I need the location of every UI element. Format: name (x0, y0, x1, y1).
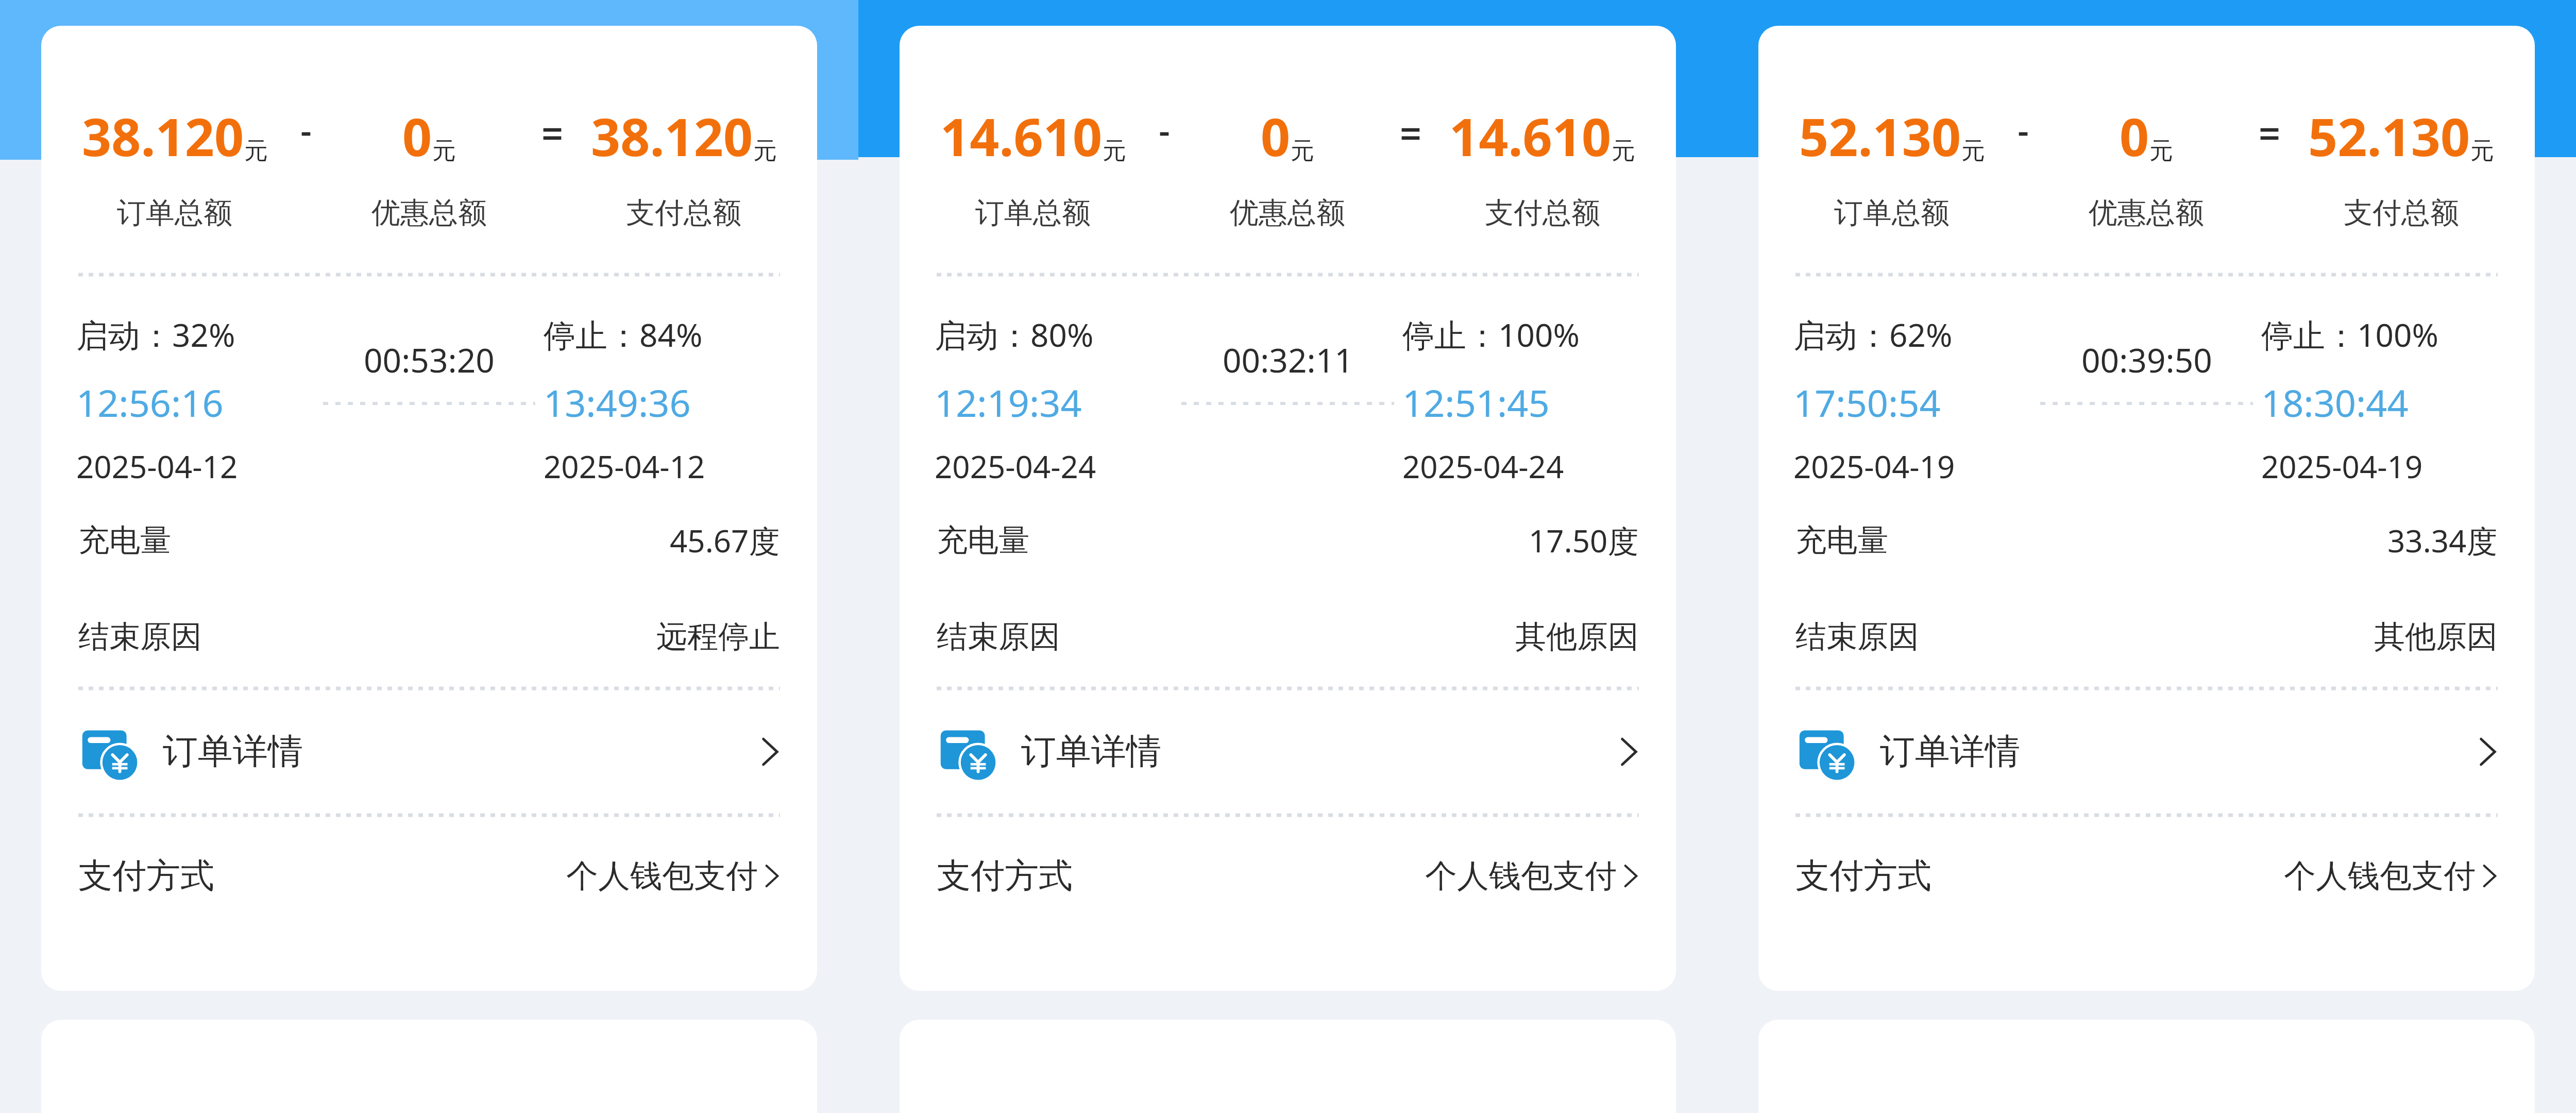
staticText: 0 (402, 101, 432, 171)
staticText: 充电量 (78, 521, 171, 560)
staticText: 订单详情 (163, 730, 303, 774)
staticText: 充电量 (1795, 521, 1888, 560)
staticText: 优惠总额 (2089, 195, 2204, 231)
staticText: 12:19:34 (935, 377, 1082, 428)
staticText: 元 (1291, 136, 1314, 166)
staticText: 其他原因 (2374, 617, 2498, 656)
staticText: 订单总额 (1834, 195, 1950, 231)
staticText: 38.120 (82, 101, 244, 171)
staticText: 订单详情 (1021, 730, 1161, 774)
staticText: 启动：80% (935, 313, 1094, 357)
staticText: 0 (1261, 101, 1291, 171)
staticText: 其他原因 (1515, 617, 1639, 656)
staticText: 充电量 (937, 521, 1029, 560)
staticText: 2025-04-19 (2261, 445, 2423, 487)
staticText: 支付方式 (78, 854, 214, 897)
staticText: 2025-04-19 (1793, 445, 1955, 487)
staticText: 元 (1612, 136, 1635, 166)
staticText: 支付方式 (937, 854, 1073, 897)
staticText: 52.130 (1799, 101, 1961, 171)
staticText: 启动：32% (76, 313, 235, 357)
staticText: 18:30:44 (2261, 377, 2409, 428)
staticText: 元 (1961, 136, 1985, 166)
staticText: 元 (753, 136, 777, 166)
staticText: 订单总额 (117, 195, 232, 231)
button[interactable]: 支付方式 (900, 817, 1676, 934)
staticText: 个人钱包支付 (1425, 856, 1617, 896)
staticText: 14.610 (1449, 101, 1612, 171)
staticText: 52.130 (2308, 101, 2470, 171)
staticText: 38.120 (591, 101, 753, 171)
staticText: 优惠总额 (371, 195, 487, 231)
staticText: 元 (244, 136, 268, 166)
staticText: 订单详情 (1880, 730, 2020, 774)
staticText: 00:39:50 (2081, 338, 2212, 382)
staticText: 00:53:20 (364, 338, 495, 382)
staticText: 元 (1103, 136, 1126, 166)
staticText: 0 (2120, 101, 2149, 171)
staticText: 2025-04-12 (544, 445, 705, 487)
staticText: 停止：84% (544, 313, 703, 357)
staticText: 2025-04-24 (935, 445, 1096, 487)
staticText: 支付总额 (2344, 195, 2459, 231)
staticText: 元 (432, 136, 456, 166)
staticText: 12:51:45 (1402, 377, 1550, 428)
button[interactable]: 订单详情 (900, 690, 1676, 813)
staticText: 优惠总额 (1230, 195, 1345, 231)
staticText: 支付总额 (1485, 195, 1600, 231)
staticText: 启动：62% (1793, 313, 1953, 357)
staticText: 14.610 (940, 101, 1103, 171)
button[interactable]: 订单详情 (1758, 690, 2535, 813)
staticText: 17:50:54 (1793, 377, 1941, 428)
staticText: 订单总额 (975, 195, 1091, 231)
staticText: 元 (2149, 136, 2173, 166)
other: 订单详情 (78, 718, 145, 785)
button[interactable]: 支付方式 (41, 817, 817, 934)
staticText: 支付总额 (626, 195, 741, 231)
staticText: 结束原因 (1795, 617, 1919, 656)
staticText: 13:49:36 (544, 377, 691, 428)
button[interactable]: 订单详情 (41, 690, 817, 813)
staticText: 12:56:16 (76, 377, 224, 428)
staticText: 远程停止 (656, 617, 780, 656)
other: 订单详情 (937, 718, 1004, 785)
staticText: 2025-04-24 (1402, 445, 1564, 487)
staticText: 17.50度 (1529, 519, 1639, 562)
staticText: 结束原因 (937, 617, 1060, 656)
staticText: 个人钱包支付 (566, 856, 758, 896)
staticText: 33.34度 (2387, 519, 2498, 562)
staticText: 45.67度 (670, 519, 780, 562)
button[interactable]: 支付方式 (1758, 817, 2535, 934)
staticText: 个人钱包支付 (2284, 856, 2476, 896)
other: 订单详情 (1795, 718, 1862, 785)
staticText: 停止：100% (1402, 313, 1580, 357)
staticText: 结束原因 (78, 617, 202, 656)
staticText: 00:32:11 (1223, 338, 1353, 382)
staticText: 元 (2470, 136, 2494, 166)
staticText: 支付方式 (1795, 854, 1931, 897)
staticText: 停止：100% (2261, 313, 2438, 357)
staticText: 2025-04-12 (76, 445, 238, 487)
